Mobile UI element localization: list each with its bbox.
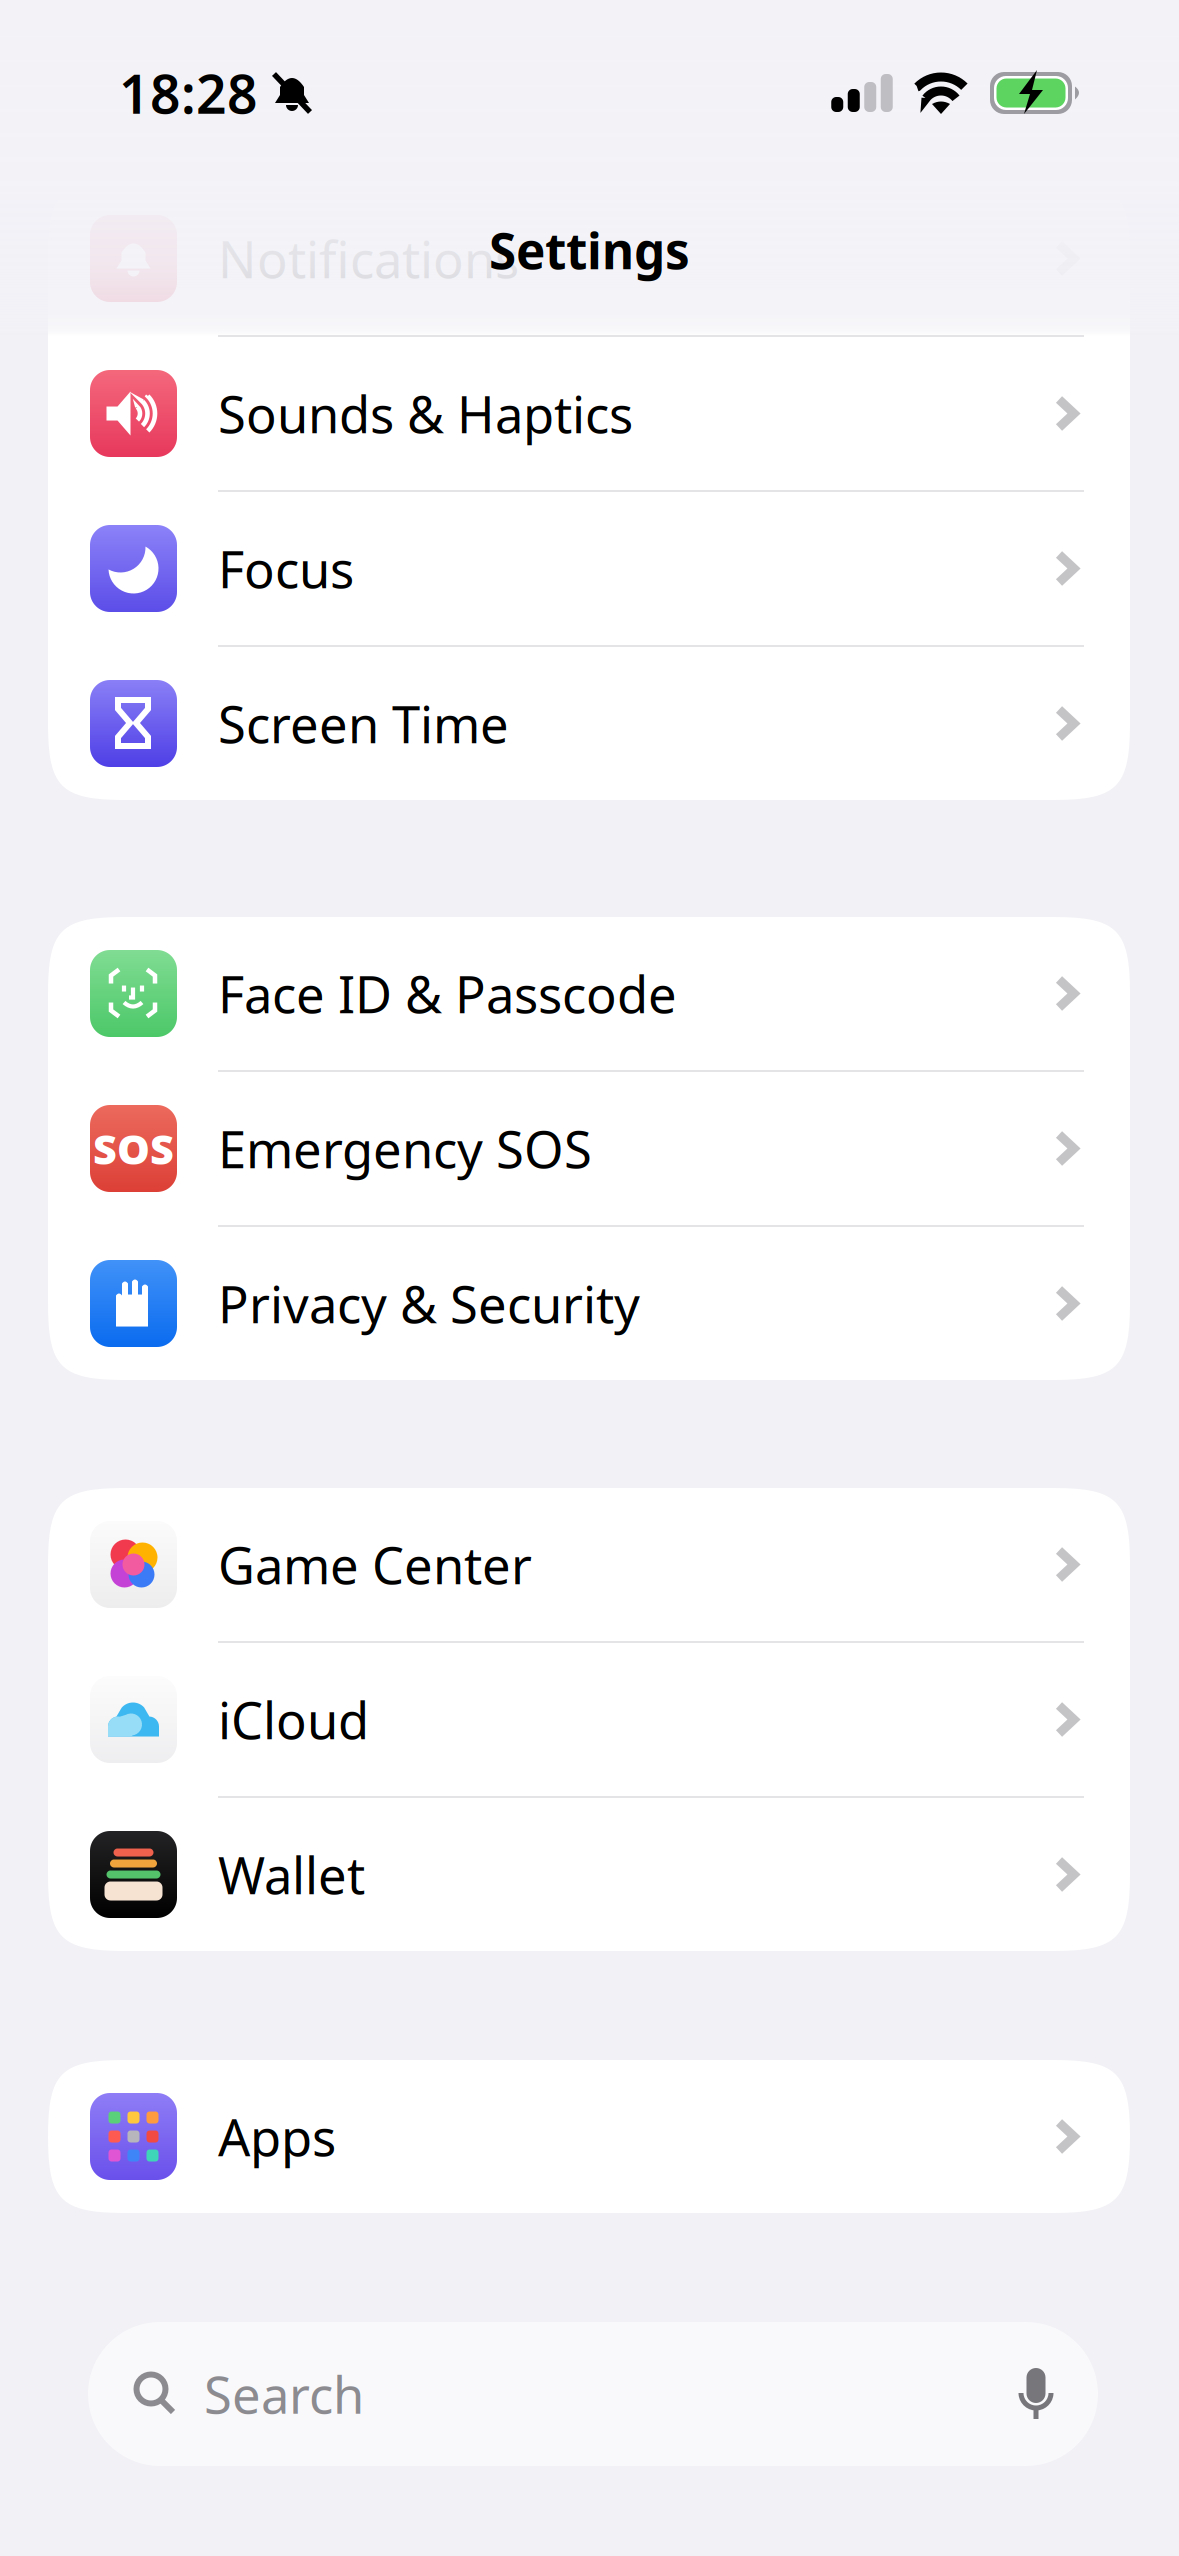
staticText: SOS (93, 1121, 174, 1176)
button[interactable]: Notifications (48, 182, 1130, 335)
staticText: Screen Time (218, 690, 509, 757)
staticText: Settings (489, 217, 690, 283)
staticText: Apps (218, 2103, 336, 2170)
staticText: iCloud (218, 1686, 369, 1753)
button[interactable]: Search (88, 2322, 1098, 2466)
button[interactable]: Apps (48, 2060, 1130, 2213)
staticText: Sounds & Haptics (218, 380, 633, 447)
button[interactable]: Focus (48, 492, 1130, 645)
staticText: Focus (218, 535, 354, 602)
staticText: Wallet (218, 1841, 365, 1908)
button[interactable]: Wallet (48, 1798, 1130, 1951)
button[interactable]: Screen Time (48, 647, 1130, 800)
button[interactable]: SOS (48, 1072, 1130, 1225)
staticText: Face ID & Passcode (218, 960, 677, 1027)
button[interactable]: Privacy & Security (48, 1227, 1130, 1380)
button[interactable]: Face ID & Passcode (48, 917, 1130, 1070)
button[interactable]: iCloud (48, 1643, 1130, 1796)
staticText: Game Center (218, 1531, 532, 1598)
staticText: Privacy & Security (218, 1270, 640, 1337)
staticText: Emergency SOS (218, 1115, 592, 1182)
staticText: Search (204, 2360, 364, 2428)
staticText: 18:28 (119, 58, 258, 128)
button[interactable]: Sounds & Haptics (48, 337, 1130, 490)
staticText: Notifications (218, 225, 519, 292)
button[interactable]: Game Center (48, 1488, 1130, 1641)
